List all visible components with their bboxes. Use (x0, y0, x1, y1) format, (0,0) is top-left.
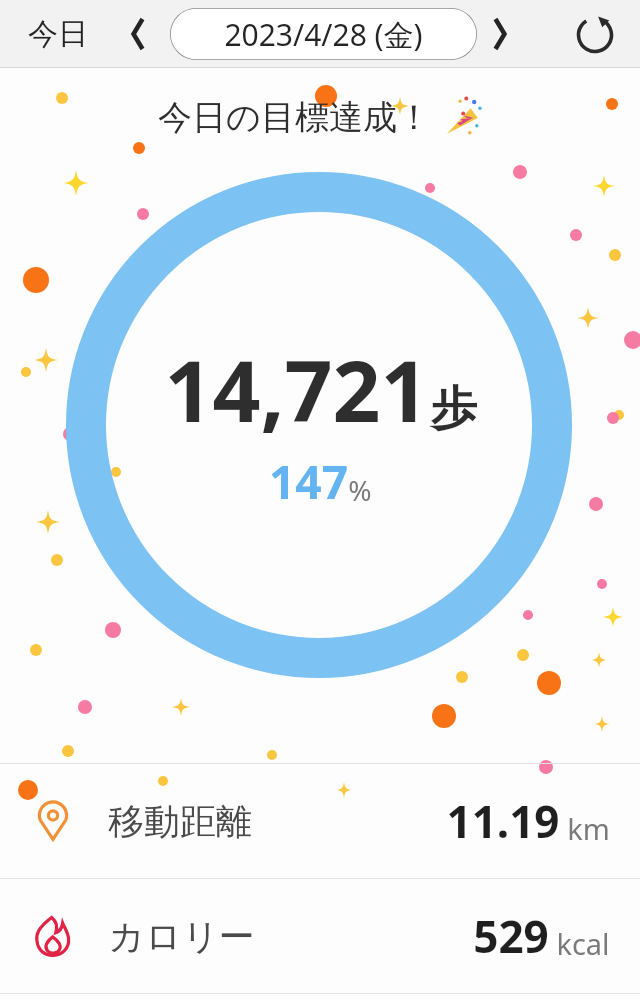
staticText: km (567, 809, 610, 848)
staticText: 11.19 (446, 791, 560, 851)
other: Distance (30, 798, 76, 844)
staticText: 今日 (28, 15, 88, 53)
staticText: 529 (473, 906, 549, 966)
other: Calories (30, 913, 76, 959)
staticText: カロリー (108, 914, 255, 959)
staticText: 歩 (431, 380, 477, 438)
staticText: 147 (269, 450, 348, 513)
button[interactable]: Previous day (116, 12, 160, 56)
button[interactable]: 2023/4/28 (金) (170, 8, 477, 60)
staticText: 今日の目標達成！ (158, 96, 431, 139)
staticText: kcal (556, 924, 610, 963)
button[interactable]: Distance (0, 764, 640, 878)
staticText: 2023/4/28 (金) (224, 14, 423, 55)
button[interactable]: Next day (478, 12, 522, 56)
staticText: 14,721 (164, 332, 429, 446)
button[interactable]: Calories (0, 879, 640, 993)
staticText: 移動距離 (108, 799, 252, 844)
staticText: % (348, 471, 372, 509)
button[interactable]: 今日 (20, 9, 96, 59)
button[interactable]: Refresh (570, 9, 620, 59)
